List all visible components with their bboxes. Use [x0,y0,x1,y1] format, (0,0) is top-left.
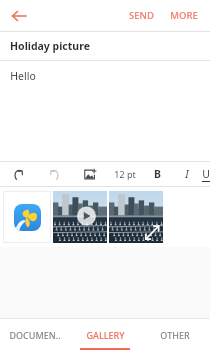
button[interactable]: DOCUMEN.. [0,319,70,350]
button[interactable]: Back [4,1,34,31]
button[interactable]: U [202,162,210,186]
button[interactable]: I [172,162,202,186]
staticText: DOCUMEN.. [9,329,61,341]
button[interactable]: 12 pt [108,162,142,186]
staticText: B [154,167,161,181]
button[interactable]: Insert image [72,162,108,186]
button[interactable]: Open Gallery [3,191,51,243]
button[interactable]: Undo [0,162,36,186]
button[interactable]: SEND [123,3,160,28]
button[interactable]: B [142,162,172,186]
staticText: Holiday picture [10,39,90,53]
staticText: MORE [170,9,198,22]
button[interactable]: Hello [0,61,210,91]
button[interactable]: MORE [164,3,204,28]
button[interactable]: Holiday picture [0,32,210,60]
staticText: Hello [10,69,36,83]
button[interactable]: Redo [36,162,72,186]
staticText: GALLERY [86,329,125,341]
button[interactable]: Photo attachment [109,191,163,243]
staticText: U [202,167,210,181]
button[interactable]: GALLERY [70,319,140,350]
staticText: 12 pt [114,168,136,180]
button[interactable]: OTHER [140,319,210,350]
staticText: I [185,167,189,181]
button[interactable]: Video attachment [53,191,107,243]
staticText: SEND [129,9,154,22]
staticText: OTHER [160,329,190,341]
